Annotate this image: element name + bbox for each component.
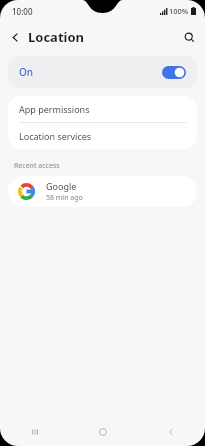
button[interactable]: Home — [69, 418, 137, 446]
staticText: 100% — [169, 6, 189, 16]
button[interactable]: Location services — [8, 123, 197, 149]
button[interactable]: Back — [137, 418, 205, 446]
staticText: App permissions — [19, 103, 90, 115]
staticText: 10:00 — [12, 6, 33, 17]
button[interactable]: Search — [178, 26, 200, 48]
button[interactable]: App permissions — [8, 96, 197, 122]
button[interactable]: Back — [4, 26, 26, 48]
staticText: 58 min ago — [46, 193, 83, 203]
button[interactable]: On — [8, 56, 197, 88]
staticText: Location — [28, 28, 84, 46]
staticText: Recent access — [14, 161, 60, 171]
staticText: Google — [46, 180, 77, 192]
button[interactable]: Google — [8, 176, 197, 207]
staticText: Location services — [19, 130, 92, 142]
staticText: On — [19, 65, 34, 79]
button[interactable]: Recent apps — [0, 418, 69, 446]
